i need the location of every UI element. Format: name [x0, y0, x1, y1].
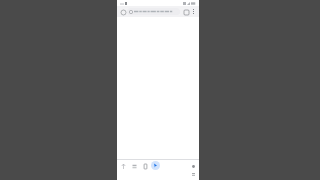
button[interactable]: Tabs: [182, 8, 190, 16]
button[interactable]: Device: [141, 162, 149, 170]
button[interactable]: Navigate up: [119, 162, 127, 170]
button[interactable]: Back: [119, 8, 127, 16]
button[interactable]: [127, 8, 180, 15]
button[interactable]: Record: [189, 162, 197, 170]
button[interactable]: Inspect element: [151, 161, 160, 170]
button[interactable]: More options: [190, 8, 197, 15]
button[interactable]: Menu: [191, 172, 196, 177]
button[interactable]: Layers: [130, 162, 138, 170]
